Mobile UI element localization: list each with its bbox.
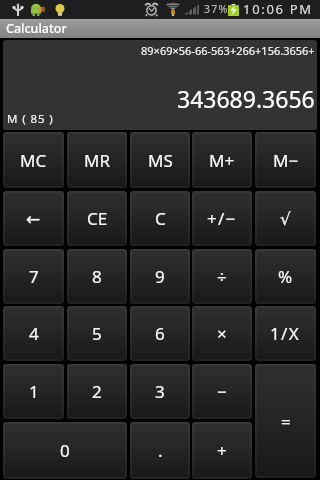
other: Wi-Fi <box>166 3 180 16</box>
button[interactable]: % <box>255 249 316 304</box>
button[interactable]: 7 <box>3 249 64 304</box>
staticText: 8 <box>92 265 102 288</box>
staticText: 9 <box>155 265 165 288</box>
staticText: × <box>217 322 227 345</box>
staticText: 4 <box>29 322 39 345</box>
button[interactable]: C <box>130 191 190 246</box>
button[interactable]: − <box>192 364 252 419</box>
staticText: 0 <box>60 439 70 462</box>
button[interactable]: M− <box>255 132 316 188</box>
button[interactable]: MS <box>130 132 190 188</box>
staticText: % <box>278 265 293 288</box>
staticText: MS <box>148 149 173 172</box>
button[interactable]: = <box>255 364 316 478</box>
button[interactable]: 8 <box>67 249 127 304</box>
other: Android system <box>30 3 42 16</box>
staticText: = <box>281 410 291 433</box>
staticText: 343689.3656 <box>177 83 315 114</box>
button[interactable]: ÷ <box>192 249 252 304</box>
button[interactable]: 1 <box>3 364 64 419</box>
staticText: . <box>158 439 163 462</box>
other: Mobile signal <box>184 4 199 15</box>
staticText: 10:06 PM <box>243 0 313 18</box>
staticText: M− <box>273 149 299 172</box>
button[interactable]: 1/X <box>255 306 316 361</box>
staticText: + <box>217 439 227 462</box>
staticText: ← <box>26 209 41 229</box>
other: Alarm set <box>144 3 159 16</box>
staticText: MR <box>84 149 110 172</box>
button[interactable]: √ <box>255 191 316 246</box>
staticText: MC <box>20 149 47 172</box>
staticText: 37% <box>204 2 229 16</box>
staticText: 7 <box>29 265 39 288</box>
staticText: M+ <box>209 149 235 172</box>
other: USB connected <box>12 3 24 16</box>
button[interactable]: . <box>130 422 190 479</box>
staticText: Calculator <box>6 20 67 37</box>
staticText: √ <box>280 209 291 229</box>
button[interactable]: 0 <box>3 422 127 479</box>
staticText: 5 <box>92 322 102 345</box>
staticText: 2 <box>92 380 102 403</box>
button[interactable]: 3 <box>130 364 190 419</box>
staticText: +/− <box>207 207 237 230</box>
staticText: 3 <box>155 380 165 403</box>
staticText: 1/X <box>270 322 301 345</box>
button[interactable]: 4 <box>3 306 64 361</box>
button[interactable]: CE <box>67 191 127 246</box>
staticText: ÷ <box>217 265 227 288</box>
other: Battery charging <box>228 4 239 16</box>
button[interactable]: MC <box>3 132 64 188</box>
staticText: 89×69×56-66-563+266+156.3656+ <box>141 43 315 58</box>
staticText: 1 <box>29 380 39 403</box>
button[interactable]: MR <box>67 132 127 188</box>
button[interactable]: × <box>192 306 252 361</box>
button[interactable]: 6 <box>130 306 190 361</box>
other: Tip <box>55 3 65 16</box>
button[interactable]: M+ <box>192 132 252 188</box>
staticText: 6 <box>155 322 165 345</box>
button[interactable]: ← <box>3 191 64 246</box>
staticText: C <box>155 207 166 230</box>
button[interactable]: 2 <box>67 364 127 419</box>
button[interactable]: + <box>192 422 252 479</box>
staticText: M ( 85 ) <box>7 111 54 127</box>
button[interactable]: +/− <box>192 191 252 246</box>
staticText: − <box>217 380 227 403</box>
button[interactable]: 9 <box>130 249 190 304</box>
staticText: CE <box>87 207 108 230</box>
button[interactable]: 5 <box>67 306 127 361</box>
